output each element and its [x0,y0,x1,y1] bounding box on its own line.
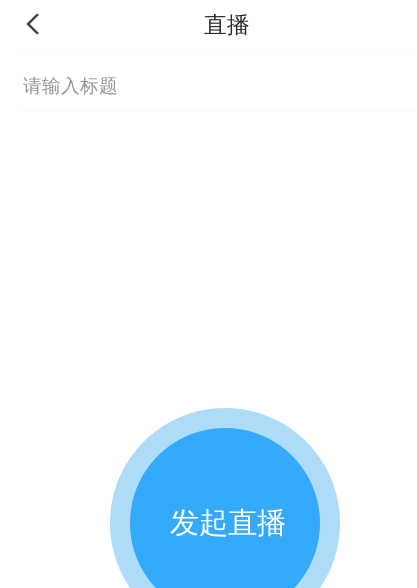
staticText: 发起直播 [170,505,286,541]
button[interactable]: 发起直播 [110,408,340,588]
staticText: 直播 [204,11,250,39]
staticText: 请输入标题 [23,74,118,97]
button[interactable]: Back [11,2,55,46]
